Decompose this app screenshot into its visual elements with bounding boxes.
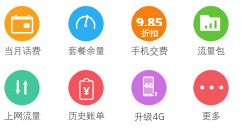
staticText: 升级4G <box>134 110 165 122</box>
button[interactable]: 手机交费 <box>118 3 180 45</box>
button[interactable]: 流量包 <box>180 3 242 45</box>
staticText: 手机交费 <box>131 45 168 57</box>
staticText: 历史账单 <box>68 110 105 122</box>
button[interactable]: 上网流量 <box>0 67 53 109</box>
staticText: 折扣 <box>141 28 158 38</box>
staticText: 9.85 <box>136 13 163 26</box>
staticText: ¥ <box>83 83 90 95</box>
staticText: 流量包 <box>197 45 225 57</box>
button[interactable]: 升级4G <box>118 67 180 109</box>
button[interactable]: 当月话费 <box>0 3 53 45</box>
button[interactable]: 更多 <box>180 67 242 109</box>
staticText: 更多 <box>202 110 221 122</box>
staticText: 套餐余量 <box>68 45 105 57</box>
staticText: 4G <box>144 80 154 90</box>
staticText: 上网流量 <box>4 110 41 122</box>
button[interactable]: 历史账单 <box>55 67 117 109</box>
button[interactable]: 套餐余量 <box>55 3 117 45</box>
staticText: 当月话费 <box>4 45 41 57</box>
